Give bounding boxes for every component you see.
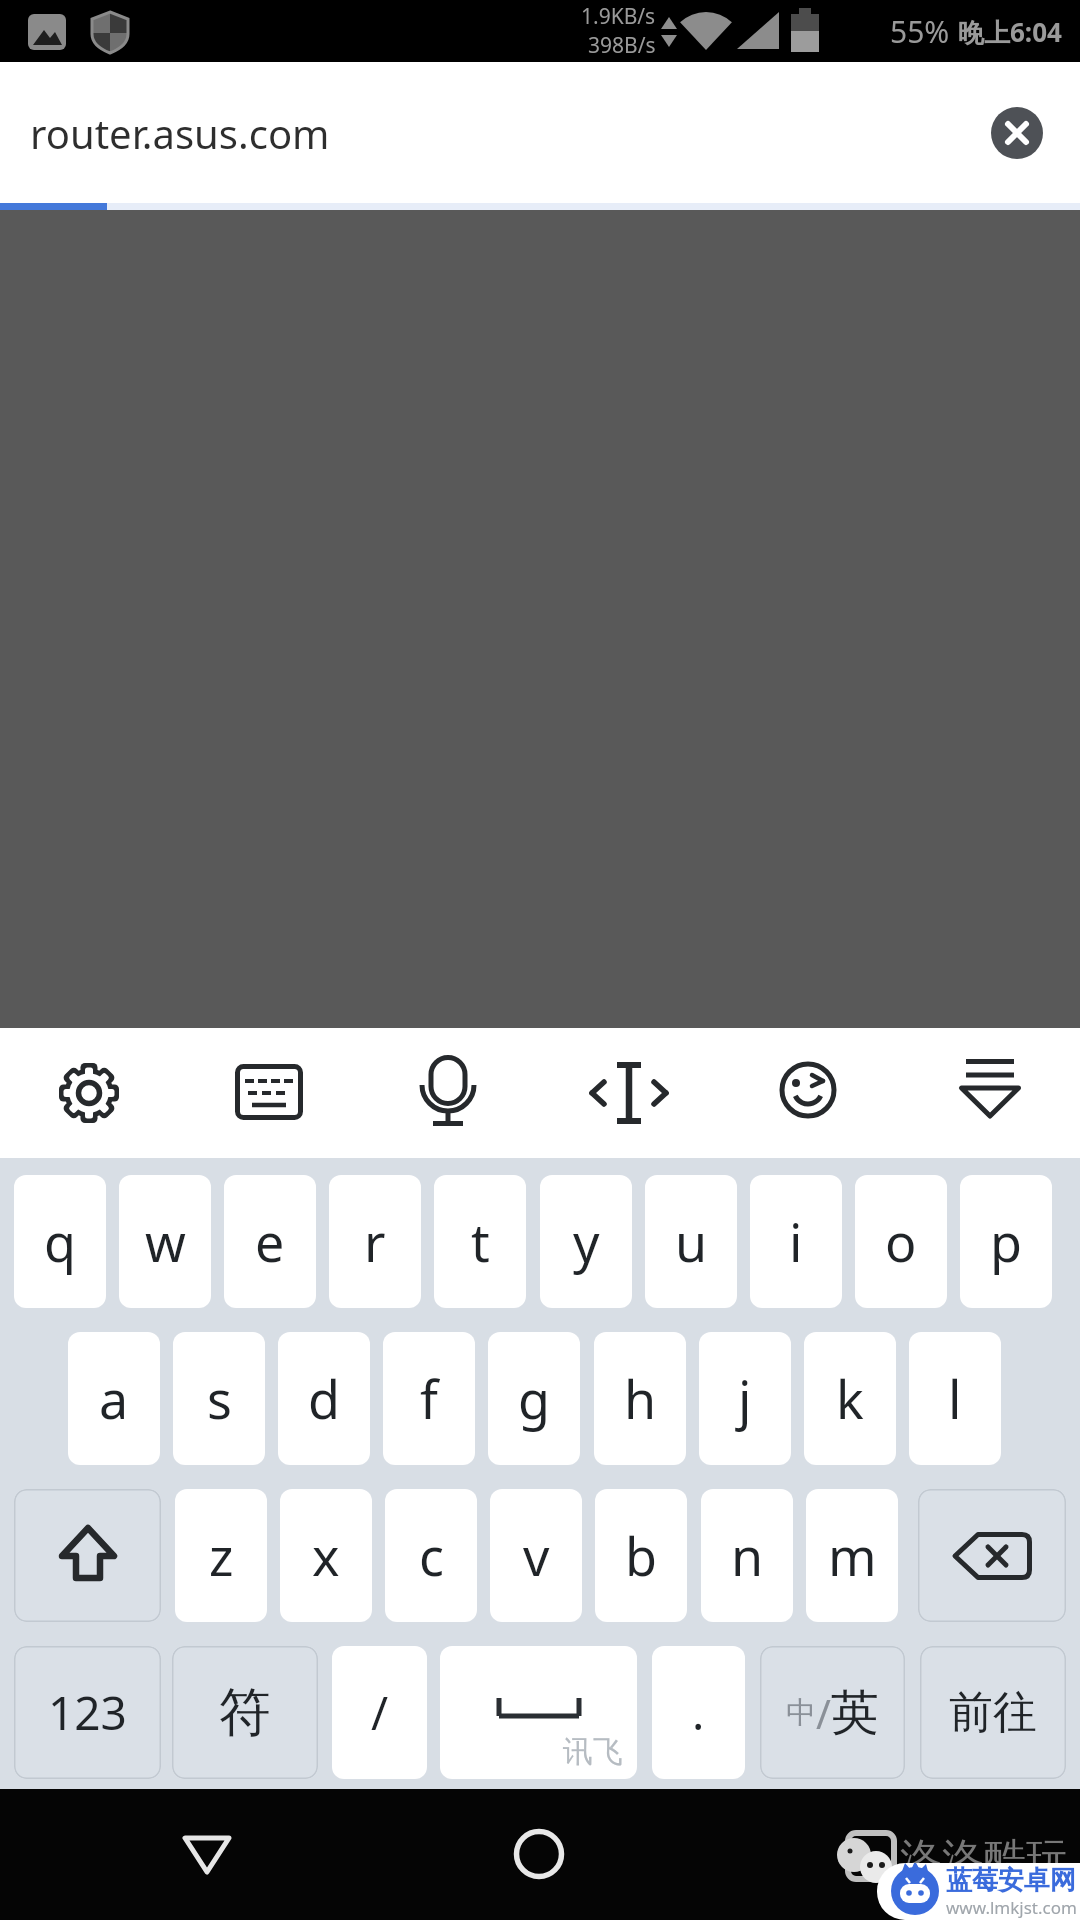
staticText: g	[518, 1363, 550, 1434]
button[interactable]: n	[701, 1489, 793, 1622]
staticText: y	[573, 1206, 600, 1277]
button[interactable]: s	[173, 1332, 265, 1465]
staticText: v	[523, 1520, 550, 1591]
button[interactable]: 中	[760, 1646, 905, 1779]
staticText: u	[675, 1206, 708, 1277]
button[interactable]: b	[595, 1489, 687, 1622]
button[interactable]: p	[960, 1175, 1052, 1308]
staticText: 前往	[949, 1685, 1037, 1740]
button[interactable]: q	[14, 1175, 106, 1308]
button[interactable]: i	[750, 1175, 842, 1308]
staticText: i	[789, 1206, 803, 1277]
staticText: a	[99, 1363, 129, 1434]
staticText: o	[885, 1206, 917, 1277]
button[interactable]: y	[540, 1175, 632, 1308]
button[interactable]: a	[68, 1332, 160, 1465]
button[interactable]: j	[699, 1332, 791, 1465]
button[interactable]	[57, 1061, 121, 1125]
staticText: .	[692, 1681, 705, 1744]
button[interactable]: .	[652, 1646, 745, 1779]
staticText: 55%	[890, 11, 958, 52]
button[interactable]: g	[488, 1332, 580, 1465]
staticText: r	[364, 1206, 386, 1277]
button[interactable]: k	[804, 1332, 896, 1465]
button[interactable]	[14, 1489, 161, 1622]
button[interactable]	[991, 107, 1043, 159]
button[interactable]: 讯飞	[440, 1646, 637, 1779]
button[interactable]	[589, 1062, 669, 1124]
staticText: 1.9KB/s	[581, 2, 656, 31]
staticText: s	[207, 1363, 232, 1434]
button[interactable]: t	[434, 1175, 526, 1308]
button[interactable]: f	[383, 1332, 475, 1465]
staticText: n	[731, 1520, 764, 1591]
staticText: l	[948, 1363, 962, 1434]
staticText: 洛洛酷玩	[900, 1833, 1068, 1886]
staticText: z	[209, 1520, 234, 1591]
button[interactable]: d	[278, 1332, 370, 1465]
staticText: router.asus.com	[30, 106, 330, 160]
button[interactable]: u	[645, 1175, 737, 1308]
staticText: 中	[786, 1694, 816, 1732]
button[interactable]	[779, 1061, 837, 1119]
button[interactable]	[418, 1055, 478, 1131]
staticText: d	[308, 1363, 340, 1434]
staticText: /	[371, 1681, 389, 1744]
staticText: t	[471, 1206, 490, 1277]
staticText: www.lmkjst.com	[946, 1896, 1077, 1919]
button[interactable]: 前往	[920, 1646, 1066, 1779]
staticText: /	[816, 1686, 831, 1740]
button[interactable]: z	[175, 1489, 267, 1622]
button[interactable]: 123	[14, 1646, 161, 1779]
staticText: q	[44, 1206, 76, 1277]
button[interactable]	[959, 1059, 1021, 1121]
button[interactable]: o	[855, 1175, 947, 1308]
button[interactable]: h	[594, 1332, 686, 1465]
staticText: 讯飞	[563, 1733, 623, 1771]
button[interactable]: l	[909, 1332, 1001, 1465]
button[interactable]	[918, 1489, 1066, 1622]
button[interactable]: w	[119, 1175, 211, 1308]
button[interactable]: e	[224, 1175, 316, 1308]
staticText: h	[624, 1363, 657, 1434]
button[interactable]: c	[385, 1489, 477, 1622]
staticText: p	[990, 1206, 1022, 1277]
button[interactable]: r	[329, 1175, 421, 1308]
staticText: x	[312, 1520, 340, 1591]
button[interactable]: /	[332, 1646, 427, 1779]
staticText: 符	[219, 1680, 271, 1746]
staticText: w	[145, 1206, 186, 1277]
staticText: 晚上6:04	[958, 14, 1062, 50]
button[interactable]: 符	[172, 1646, 318, 1779]
button[interactable]	[510, 1825, 568, 1883]
button[interactable]: v	[490, 1489, 582, 1622]
button[interactable]	[235, 1064, 303, 1120]
staticText: 398B/s	[588, 31, 656, 60]
staticText: m	[828, 1520, 877, 1591]
staticText: e	[255, 1206, 285, 1277]
button[interactable]: m	[806, 1489, 898, 1622]
staticText: 英	[831, 1683, 879, 1743]
staticText: 123	[48, 1681, 127, 1744]
button[interactable]: x	[280, 1489, 372, 1622]
staticText: f	[420, 1363, 438, 1434]
staticText: c	[419, 1520, 444, 1591]
staticText: k	[836, 1363, 864, 1434]
button[interactable]	[178, 1825, 236, 1883]
staticText: b	[625, 1520, 657, 1591]
staticText: 蓝莓安卓网	[946, 1864, 1076, 1897]
staticText: j	[738, 1363, 752, 1434]
